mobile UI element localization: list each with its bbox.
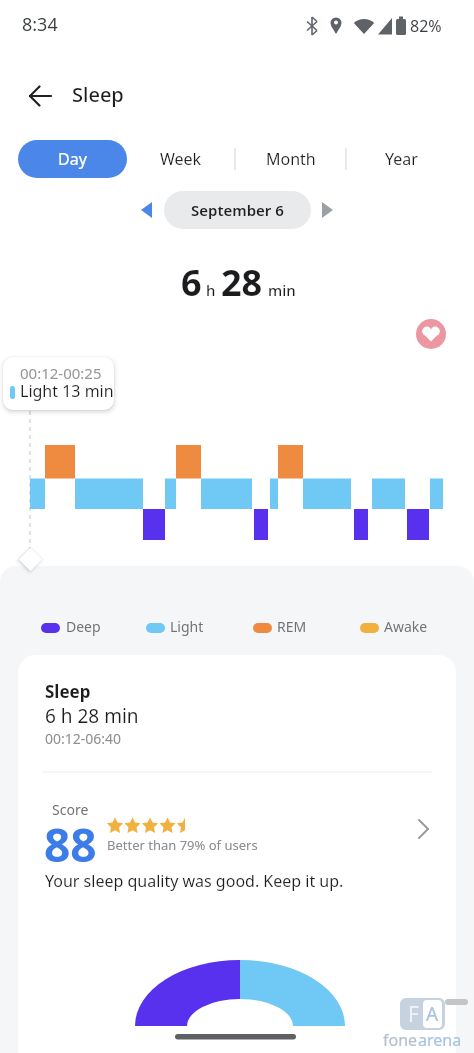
- staticText: 28: [221, 258, 263, 307]
- button[interactable]: Day: [18, 140, 127, 178]
- button[interactable]: Month: [255, 140, 327, 178]
- staticText: 00:12-06:40: [45, 729, 122, 748]
- staticText: Sleep: [72, 81, 124, 108]
- staticText: Week: [160, 148, 202, 170]
- staticText: Month: [266, 148, 316, 170]
- staticText: arena: [418, 1029, 462, 1051]
- staticText: Awake: [384, 617, 428, 636]
- staticText: Light: [170, 617, 204, 636]
- button[interactable]: September 6: [164, 191, 311, 229]
- staticText: 88: [44, 813, 97, 876]
- staticText: Year: [385, 148, 418, 170]
- staticText: h: [206, 280, 216, 300]
- staticText: F: [408, 1000, 419, 1029]
- button[interactable]: Year: [365, 140, 437, 178]
- staticText: REM: [277, 617, 307, 636]
- staticText: Better than 79% of users: [107, 836, 258, 854]
- staticText: A: [426, 1001, 439, 1027]
- button[interactable]: [135, 196, 159, 224]
- button[interactable]: [414, 317, 448, 351]
- staticText: 6: [181, 258, 202, 307]
- staticText: min: [268, 280, 296, 300]
- staticText: 8:34: [22, 12, 58, 37]
- staticText: Light 13 min: [20, 380, 114, 402]
- button[interactable]: [40, 788, 436, 860]
- staticText: Day: [58, 148, 87, 170]
- staticText: September 6: [191, 200, 284, 220]
- button[interactable]: Week: [145, 140, 217, 178]
- staticText: Deep: [66, 617, 101, 636]
- button[interactable]: [18, 655, 456, 1053]
- staticText: 82%: [410, 15, 442, 37]
- button[interactable]: [316, 196, 340, 224]
- button[interactable]: [20, 78, 60, 114]
- staticText: 00:12-00:25: [20, 363, 102, 383]
- staticText: Score: [52, 800, 89, 819]
- staticText: 6 h 28 min: [45, 703, 139, 729]
- staticText: Your sleep quality was good. Keep it up.: [45, 870, 344, 892]
- staticText: fone: [383, 1029, 418, 1051]
- staticText: Sleep: [45, 680, 91, 703]
